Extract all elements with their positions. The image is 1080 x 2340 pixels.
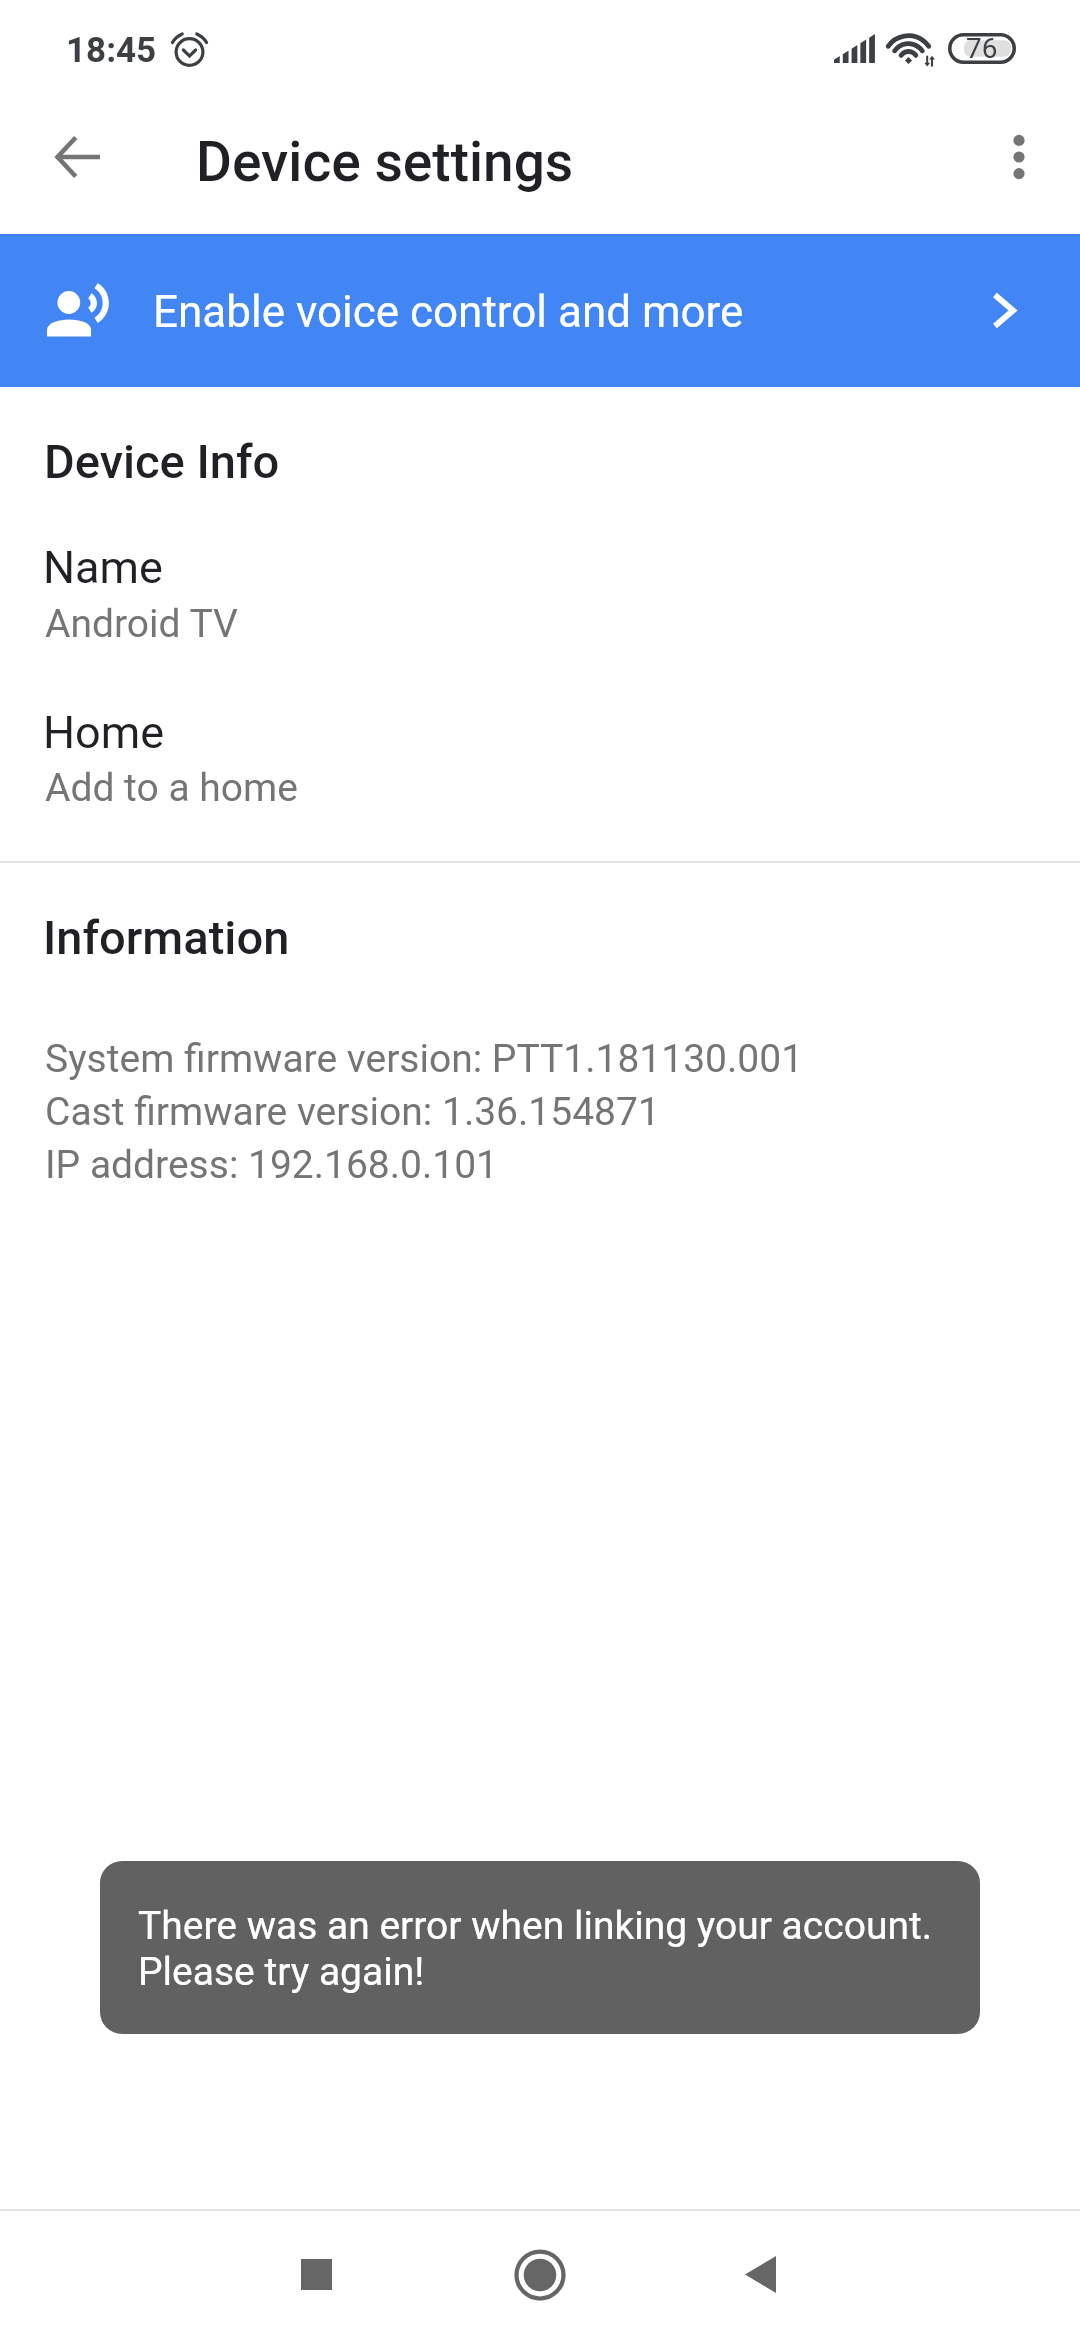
staticText: Add to a home: [45, 765, 298, 811]
staticText: There was an error when linking your acc…: [138, 1903, 932, 1995]
button[interactable]: Enable voice control and more: [0, 234, 1080, 387]
staticText: Name: [43, 541, 163, 594]
button[interactable]: Home: [0, 679, 1080, 819]
staticText: Device Info: [44, 434, 280, 489]
staticText: Home: [43, 706, 165, 759]
staticText: Device settings: [196, 130, 574, 194]
staticText: 18:45: [66, 30, 157, 71]
button[interactable]: Name: [0, 514, 1080, 654]
button[interactable]: Recent apps: [256, 2211, 376, 2340]
button[interactable]: Home: [480, 2211, 600, 2340]
staticText: Information: [43, 910, 290, 965]
staticText: Android TV: [45, 601, 238, 647]
staticText: 76: [966, 32, 998, 63]
button[interactable]: More options: [975, 113, 1063, 201]
button[interactable]: Navigate up: [33, 113, 121, 201]
staticText: Enable voice control and more: [153, 286, 744, 338]
staticText: System firmware version: PTT1.181130.001…: [45, 1036, 804, 1187]
button[interactable]: Back: [700, 2211, 820, 2340]
